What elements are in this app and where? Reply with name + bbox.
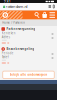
button[interactable]: Page menu [48,4,52,8]
staticText: Home / Parkeren [2,21,25,24]
button[interactable]: Cart [41,10,48,20]
button[interactable]: Parkeervergunning [0,26,57,32]
button[interactable]: Bezoekersregeling [0,46,57,52]
staticText: Periode [2,51,14,55]
staticText: Bezoekersregeling [6,47,34,51]
staticText: Bekijk alle onderwerpen [9,73,47,76]
staticText: rotterdam.nl [6,4,28,9]
staticText: 9:41 [4,0,11,3]
button[interactable]: Bekijk alle onderwerpen [3,71,54,78]
button[interactable]: Menu [48,10,56,20]
staticText: Adres [2,35,10,39]
button[interactable]: Rotterdam home [1,10,9,20]
staticText: Tarief [2,55,9,59]
staticText: Parkeervergunning [6,27,35,31]
button[interactable]: Search [33,10,41,20]
staticText: Kenteken [2,31,16,35]
button[interactable]: Tabs [52,4,55,8]
